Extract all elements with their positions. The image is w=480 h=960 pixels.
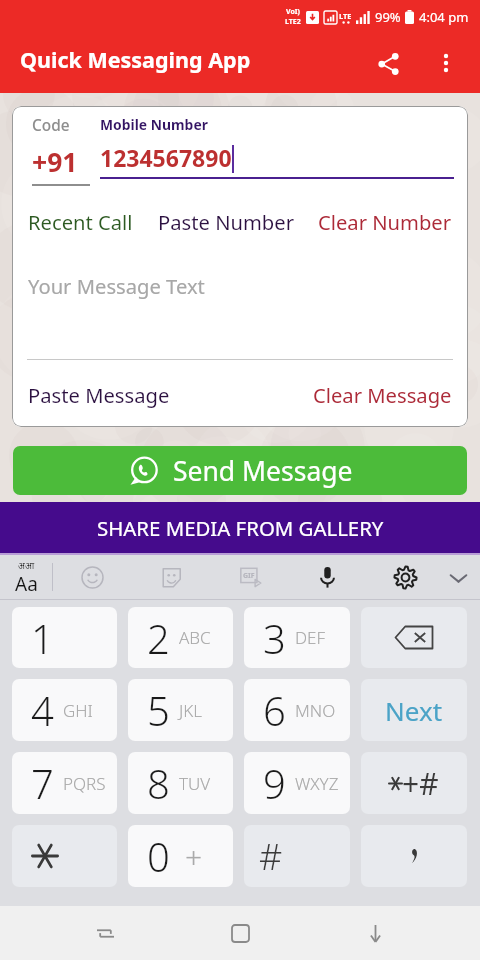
staticText: Send Message [173, 453, 353, 489]
staticText: WXYZ [295, 772, 339, 795]
button[interactable]: 1 [12, 607, 117, 668]
staticText: JKL [179, 699, 203, 722]
staticText: MNO [295, 699, 336, 722]
staticText: Mobile Number [100, 115, 208, 134]
staticText: 99% [375, 8, 401, 26]
staticText: PQRS [63, 772, 106, 795]
staticText: 8 [147, 756, 170, 810]
staticText: अआ [18, 559, 35, 571]
staticText: LTE2 [285, 17, 301, 27]
staticText: SHARE MEDIA FROM GALLERY [97, 514, 384, 542]
button[interactable]: Voice input [305, 553, 349, 600]
button[interactable]: 8 [128, 752, 233, 814]
staticText: # [259, 832, 283, 881]
button[interactable]: Recents [75, 906, 135, 960]
staticText: GIF [243, 571, 255, 581]
staticText: Next [385, 693, 443, 728]
button[interactable] [361, 825, 467, 887]
staticText: +91 [32, 144, 78, 180]
button[interactable]: Stickers [149, 553, 193, 600]
other: Delete [394, 625, 434, 650]
staticText: LTE [339, 11, 352, 21]
staticText: Paste Number [158, 208, 294, 236]
button[interactable]: More options [424, 41, 468, 85]
button[interactable]: Next [361, 679, 467, 741]
button[interactable]: Clear Number [316, 206, 454, 238]
button[interactable]: Send Message [13, 446, 467, 495]
button[interactable]: Hide keyboard [436, 553, 480, 600]
button[interactable]: 9 [244, 752, 350, 814]
staticText: 0 [147, 829, 170, 883]
staticText: Clear Message [313, 381, 452, 409]
staticText: + [185, 836, 203, 877]
button[interactable]: 6 [244, 679, 350, 741]
button[interactable]: Clear Message [311, 379, 454, 411]
button[interactable]: +# [361, 752, 467, 814]
staticText: 1234567890 [100, 142, 232, 173]
button[interactable]: Home [210, 906, 270, 960]
button[interactable]: Emoji [70, 553, 114, 600]
button[interactable] [12, 825, 117, 887]
button[interactable]: 5 [128, 679, 233, 741]
staticText: Paste Message [28, 381, 170, 409]
button[interactable]: Delete [361, 607, 467, 668]
staticText: +# [402, 763, 439, 804]
staticText: Code [32, 115, 70, 136]
staticText: Quick Messaging App [20, 45, 251, 74]
button[interactable]: 4 [12, 679, 117, 741]
button[interactable]: Back [345, 906, 405, 960]
button[interactable]: Recent Call [26, 206, 135, 238]
button[interactable]: Paste Message [26, 379, 172, 411]
button[interactable]: 2 [128, 607, 233, 668]
button[interactable]: 3 [244, 607, 350, 668]
staticText: 9 [263, 756, 286, 810]
staticText: Clear Number [318, 208, 452, 236]
button[interactable]: Change language [0, 553, 52, 600]
staticText: VoI) [286, 7, 300, 17]
staticText: Recent Call [28, 208, 133, 236]
staticText: GHI [63, 699, 93, 722]
staticText: 1 [31, 611, 54, 665]
staticText: 4:04 pm [419, 8, 469, 26]
staticText: 7 [31, 756, 54, 810]
staticText: Your Message Text [28, 272, 205, 300]
staticText: 6 [263, 683, 286, 737]
button[interactable]: 7 [12, 752, 117, 814]
staticText: 2 [147, 611, 170, 665]
staticText: 4 [31, 683, 54, 737]
staticText: 3 [263, 611, 286, 665]
button[interactable]: 0 [128, 825, 233, 887]
button[interactable]: GIF [228, 553, 272, 600]
button[interactable]: Paste Number [156, 206, 296, 238]
staticText: TUV [179, 772, 211, 795]
staticText: ABC [179, 626, 211, 649]
button[interactable]: # [244, 825, 350, 887]
button[interactable]: Settings [383, 553, 427, 600]
staticText: DEF [295, 626, 326, 649]
staticText: Aa [15, 571, 38, 597]
staticText: 5 [147, 683, 170, 737]
button[interactable]: SHARE MEDIA FROM GALLERY [0, 502, 480, 553]
button[interactable]: Share [366, 41, 410, 85]
